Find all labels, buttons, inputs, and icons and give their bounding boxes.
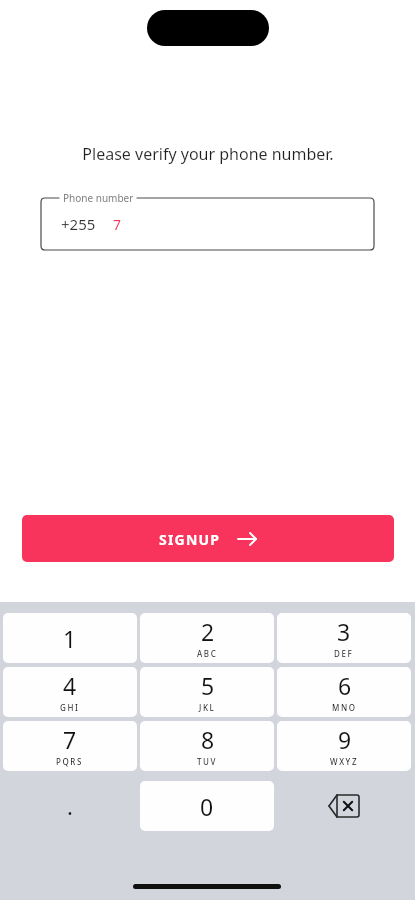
button[interactable]: .	[3, 781, 137, 831]
staticText: 5	[201, 670, 215, 701]
staticText: 1	[63, 623, 77, 654]
staticText: 7	[63, 724, 77, 755]
staticText: JKL	[199, 702, 216, 713]
button[interactable]: 7	[3, 721, 137, 771]
staticText: Phone number	[63, 191, 134, 205]
staticText: 2	[201, 616, 215, 647]
staticText: ABC	[197, 648, 218, 659]
staticText: DEF	[334, 648, 354, 659]
staticText: 0	[200, 791, 214, 822]
button[interactable]: 0	[140, 781, 274, 831]
staticText: 9	[338, 724, 352, 755]
staticText: 3	[337, 616, 351, 647]
button[interactable]: 9	[277, 721, 411, 771]
button[interactable]: 6	[277, 667, 411, 717]
staticText: .	[67, 791, 73, 821]
staticText: MNO	[332, 702, 357, 713]
staticText: TUV	[197, 756, 218, 767]
staticText: +255	[61, 214, 96, 234]
button[interactable]: 4	[3, 667, 137, 717]
button[interactable]: 2	[140, 613, 274, 663]
staticText: WXYZ	[330, 756, 359, 767]
staticText: 6	[338, 670, 352, 701]
staticText: 7	[113, 215, 122, 234]
staticText: SIGNUP	[159, 530, 221, 549]
staticText: 8	[201, 724, 215, 755]
staticText: PQRS	[56, 756, 84, 767]
staticText: Please verify your phone number.	[82, 143, 334, 165]
button[interactable]: 8	[140, 721, 274, 771]
button[interactable]: 1	[3, 613, 137, 663]
staticText: 4	[63, 670, 77, 701]
staticText: GHI	[60, 702, 80, 713]
button[interactable]: 5	[140, 667, 274, 717]
button[interactable]: Backspace	[277, 781, 411, 831]
button[interactable]: SIGNUP	[22, 515, 394, 562]
button[interactable]: 3	[277, 613, 411, 663]
